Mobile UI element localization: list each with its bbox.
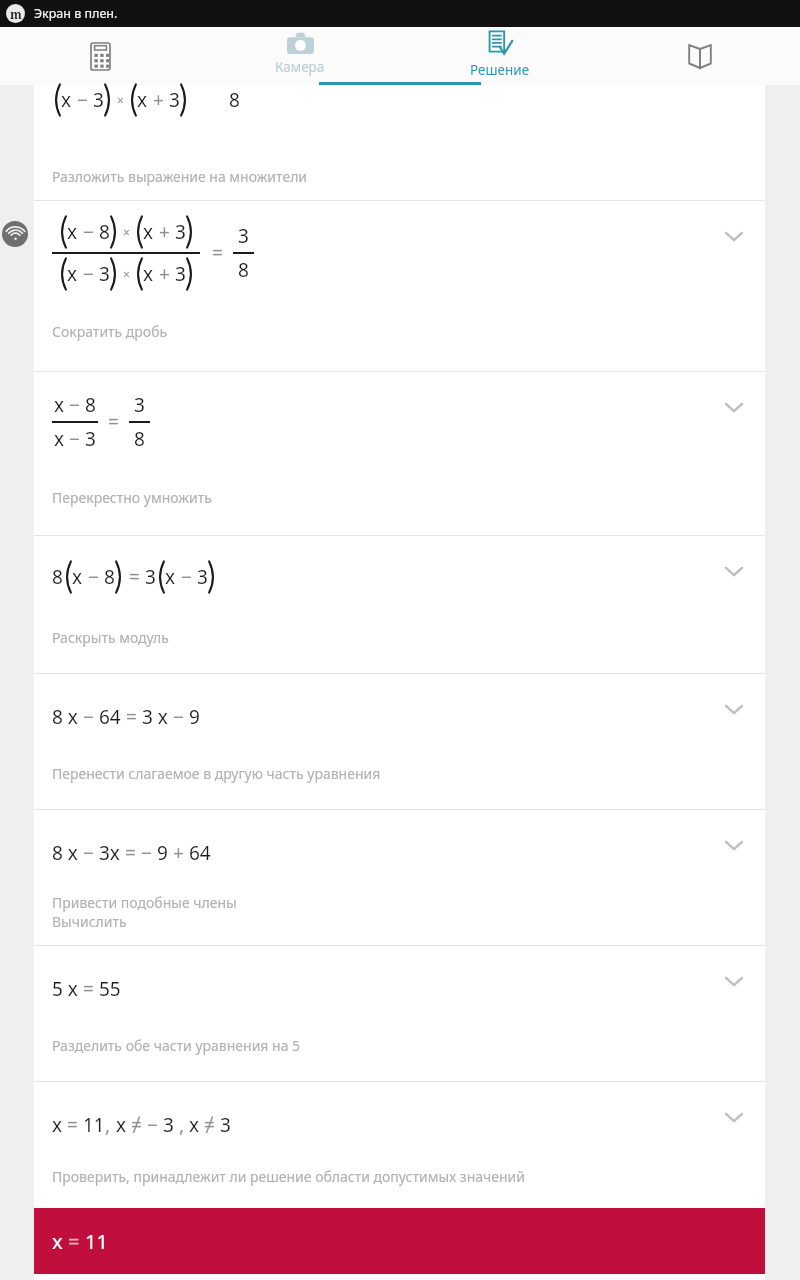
staticText: , <box>105 1112 116 1138</box>
staticText: 8 <box>134 426 145 452</box>
other: Expand step <box>721 1104 747 1130</box>
staticText: Вычислить <box>52 912 127 931</box>
staticText: Перенести слагаемое в другую часть уравн… <box>52 764 381 783</box>
staticText: m <box>10 6 22 22</box>
staticText: 9 <box>189 704 200 730</box>
staticText: − <box>141 840 157 866</box>
staticText: 3 <box>85 426 96 452</box>
staticText: + <box>173 840 189 866</box>
button[interactable]: 8 <box>34 536 765 673</box>
button[interactable]: Wi-Fi status <box>2 221 28 247</box>
staticText: Привести подобные члены <box>52 893 237 912</box>
staticText: − <box>83 704 99 730</box>
staticText: Разложить выражение на множители <box>52 167 308 186</box>
staticText: x <box>72 564 83 590</box>
staticText: x <box>189 1112 204 1138</box>
button[interactable]: x <box>34 1208 765 1274</box>
staticText: = <box>126 704 142 730</box>
staticText: Проверить, принадлежит ли решение област… <box>52 1167 525 1186</box>
button[interactable]: 5 x <box>34 946 765 1081</box>
staticText: 8 <box>52 564 63 590</box>
staticText: = <box>108 409 119 435</box>
button[interactable]: Решение <box>400 27 600 85</box>
staticText: = <box>125 840 141 866</box>
staticText: 11 <box>83 1112 105 1138</box>
staticText: x <box>67 219 78 245</box>
other: Expand step <box>721 394 747 420</box>
staticText: 8 x <box>52 704 83 730</box>
staticText: x <box>52 1112 67 1138</box>
staticText: 5 x <box>52 976 83 1002</box>
button[interactable]: x <box>34 201 765 371</box>
staticText: + <box>148 87 169 113</box>
button[interactable]: x <box>34 1082 765 1208</box>
other: Expand step <box>721 832 747 858</box>
staticText: − <box>83 840 99 866</box>
staticText: 3 <box>197 564 208 590</box>
staticText: − <box>176 564 197 590</box>
staticText: Раскрыть модуль <box>52 628 169 647</box>
staticText: 9 <box>157 840 173 866</box>
staticText: = <box>129 564 140 590</box>
staticText: − <box>69 426 85 452</box>
staticText: − <box>72 87 93 113</box>
staticText: 3 <box>134 392 145 418</box>
other: Expand step <box>721 968 747 994</box>
staticText: x <box>137 87 148 113</box>
staticText: , <box>174 1112 189 1138</box>
staticText: 8 <box>99 219 110 245</box>
staticText: x <box>165 564 176 590</box>
button[interactable]: Камера <box>200 27 400 85</box>
staticText: × <box>117 92 124 108</box>
staticText: 3 <box>93 87 104 113</box>
staticText: 3 <box>169 87 180 113</box>
button[interactable]: Calculator <box>0 27 200 85</box>
staticText: 64 <box>189 840 211 866</box>
staticText: x <box>54 392 69 418</box>
staticText: 3 <box>175 219 186 245</box>
staticText: 3x <box>99 840 125 866</box>
staticText: Камера <box>275 58 325 76</box>
staticText: × <box>123 266 130 282</box>
staticText: x <box>143 219 154 245</box>
staticText: x <box>116 1112 131 1138</box>
staticText: Экран в плен. <box>34 5 118 22</box>
staticText: x <box>52 1228 68 1255</box>
staticText: Разделить обе части уравнения на 5 <box>52 1036 301 1055</box>
staticText: + <box>154 261 175 287</box>
staticText: − <box>173 704 189 730</box>
button[interactable]: Book <box>600 27 800 85</box>
button[interactable]: 8 x <box>34 674 765 809</box>
staticText: 8 <box>238 257 249 283</box>
staticText: Перекрестно умножить <box>52 488 212 507</box>
other: Expand step <box>721 696 747 722</box>
staticText: 8 <box>85 392 96 418</box>
staticText: ≠ <box>204 1112 220 1138</box>
staticText: = <box>67 1112 83 1138</box>
staticText: × <box>123 224 130 240</box>
staticText: 8 <box>104 564 115 590</box>
staticText: − <box>78 261 99 287</box>
button[interactable]: x <box>34 85 765 200</box>
staticText: 3 <box>99 261 110 287</box>
staticText: Сократить дробь <box>52 322 168 341</box>
staticText: = <box>212 240 223 266</box>
staticText: x <box>143 261 154 287</box>
staticText: 8 <box>229 87 240 113</box>
button[interactable]: x <box>34 372 765 535</box>
staticText: + <box>154 219 175 245</box>
staticText: ≠ <box>131 1112 147 1138</box>
staticText: 64 <box>99 704 126 730</box>
staticText: 3 <box>163 1112 174 1138</box>
staticText: 3 <box>145 564 156 590</box>
staticText: 3 <box>220 1112 231 1138</box>
button[interactable]: 8 x <box>34 810 765 945</box>
other: Expand step <box>721 223 747 249</box>
staticText: Решение <box>470 61 530 79</box>
staticText: 3 x <box>142 704 173 730</box>
staticText: − <box>78 219 99 245</box>
staticText: 8 x <box>52 840 83 866</box>
other: Expand step <box>721 558 747 584</box>
staticText: x <box>61 87 72 113</box>
staticText: − <box>83 564 104 590</box>
